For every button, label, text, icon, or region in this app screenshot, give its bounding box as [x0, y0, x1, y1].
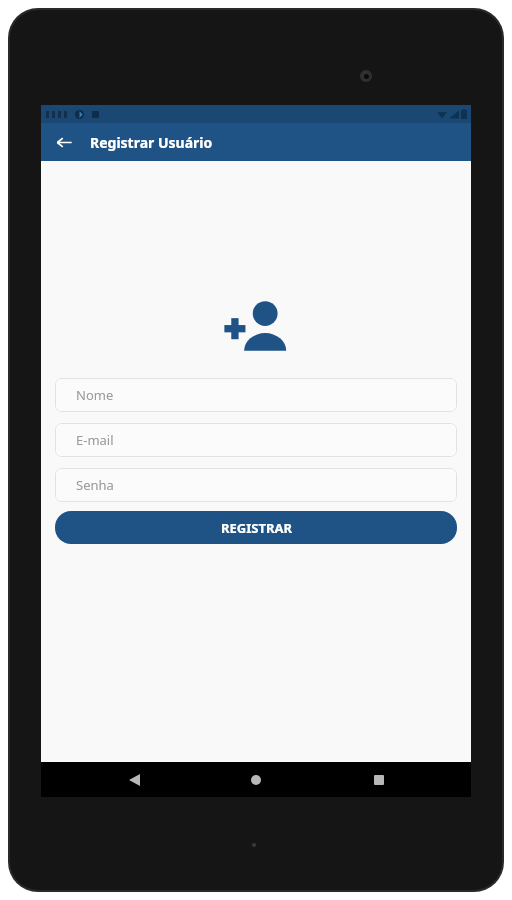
button[interactable]: Nome	[55, 378, 457, 412]
button[interactable]: REGISTRAR	[55, 511, 457, 544]
staticText: Senha	[76, 476, 114, 494]
staticText: Registrar Usuário	[90, 133, 213, 152]
button[interactable]: Senha	[55, 468, 457, 502]
staticText: REGISTRAR	[221, 519, 292, 537]
staticText: E-mail	[76, 431, 114, 449]
staticText: Nome	[76, 386, 114, 404]
button[interactable]: Home	[226, 762, 286, 797]
button[interactable]: Recent apps	[349, 762, 409, 797]
button[interactable]: E-mail	[55, 423, 457, 457]
other: Add user	[222, 299, 290, 353]
button[interactable]: Back	[47, 125, 81, 159]
button[interactable]: Back	[104, 762, 164, 797]
